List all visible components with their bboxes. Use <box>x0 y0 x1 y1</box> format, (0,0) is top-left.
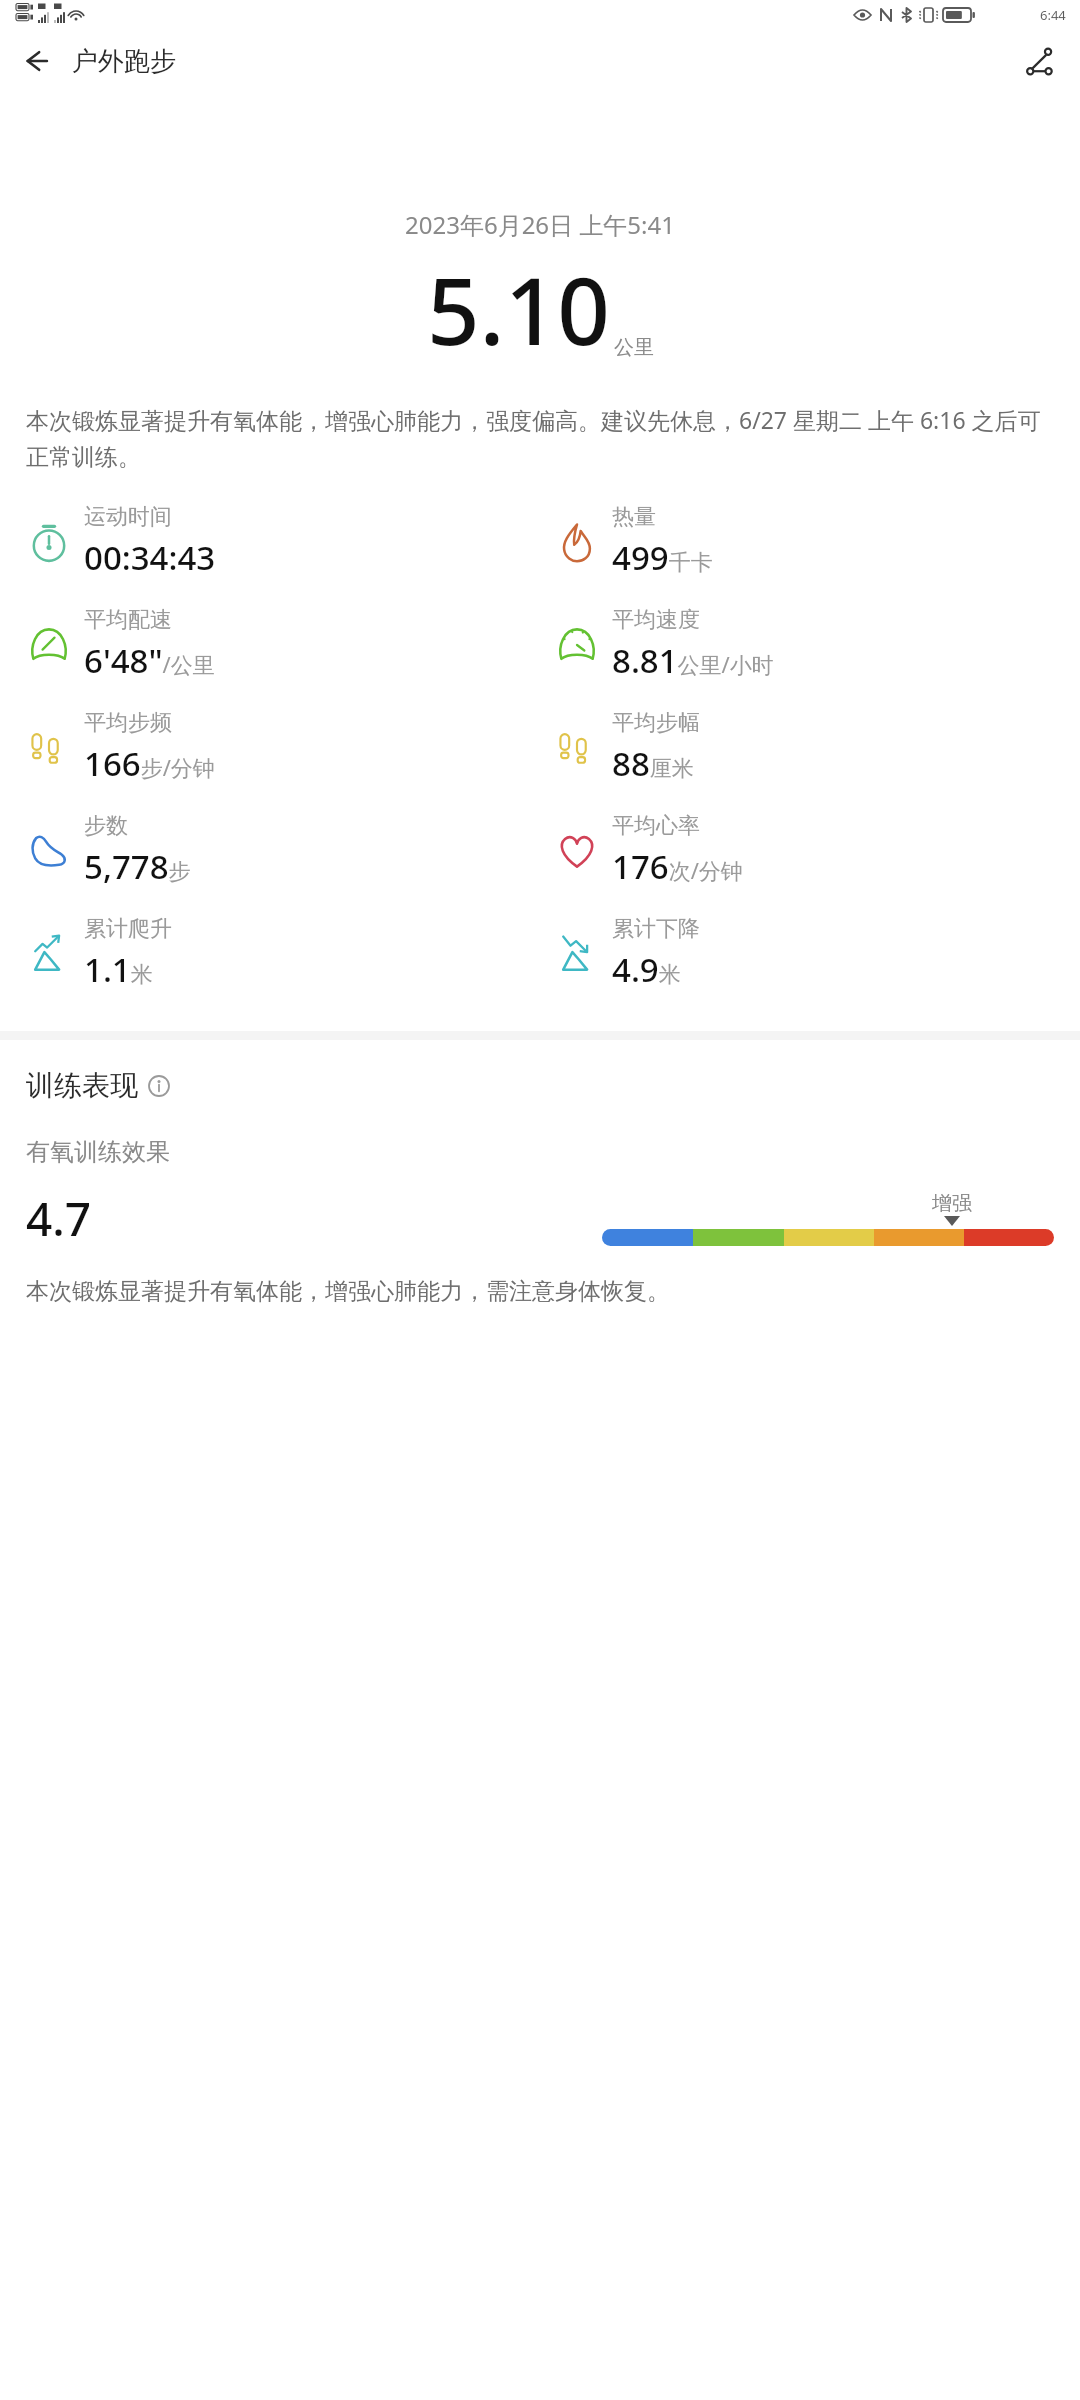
button[interactable]: 平均配速 <box>0 593 540 696</box>
staticText: 本次锻炼显著提升有氧体能，增强心肺能力，需注意身体恢复。 <box>26 1277 1054 1306</box>
button[interactable]: 平均心率 <box>540 799 1080 902</box>
staticText: 4.7 <box>26 1187 92 1250</box>
button[interactable]: 平均步频 <box>0 696 540 799</box>
staticText: 88厘米 <box>612 741 694 786</box>
staticText: 步数 <box>84 812 128 840</box>
other: Info <box>148 1075 170 1097</box>
staticText: 平均步频 <box>84 709 172 737</box>
staticText: 1.1米 <box>84 947 153 992</box>
staticText: 增强 <box>932 1191 972 1216</box>
staticText: 有氧训练效果 <box>26 1137 170 1167</box>
staticText: 累计爬升 <box>84 915 172 943</box>
staticText: 平均配速 <box>84 606 172 634</box>
staticText: 499千卡 <box>612 535 713 580</box>
staticText: 训练表现 <box>26 1068 138 1103</box>
button[interactable]: 热量 <box>540 490 1080 593</box>
button[interactable]: 平均速度 <box>540 593 1080 696</box>
staticText: 热量 <box>612 503 656 531</box>
staticText: 平均心率 <box>612 812 700 840</box>
staticText: 5,778步 <box>84 844 191 889</box>
staticText: 平均速度 <box>612 606 700 634</box>
button[interactable]: 平均步幅 <box>540 696 1080 799</box>
staticText: 2023年6月26日 上午5:41 <box>405 208 675 241</box>
button[interactable]: Back <box>10 35 62 87</box>
button[interactable]: 累计下降 <box>540 902 1080 1005</box>
staticText: 166步/分钟 <box>84 741 215 786</box>
staticText: 公里 <box>614 335 654 360</box>
staticText: 户外跑步 <box>72 45 176 78</box>
staticText: 4.9米 <box>612 947 681 992</box>
staticText: 5.10 <box>427 247 610 372</box>
staticText: 00:34:43 <box>84 535 216 580</box>
staticText: 6'48"/公里 <box>84 638 215 683</box>
staticText: 176次/分钟 <box>612 844 743 889</box>
button[interactable]: 训练表现 <box>26 1068 170 1103</box>
button[interactable]: Share <box>1014 35 1066 87</box>
staticText: 8.81公里/小时 <box>612 638 774 683</box>
staticText: 运动时间 <box>84 503 172 531</box>
staticText: 本次锻炼显著提升有氧体能，增强心肺能力，强度偏高。建议先休息，6/27 星期二 … <box>26 404 1054 472</box>
button[interactable]: 累计爬升 <box>0 902 540 1005</box>
button[interactable]: 运动时间 <box>0 490 540 593</box>
staticText: 累计下降 <box>612 915 700 943</box>
staticText: 平均步幅 <box>612 709 700 737</box>
button[interactable]: 步数 <box>0 799 540 902</box>
staticText: 6:44 <box>1040 6 1066 24</box>
